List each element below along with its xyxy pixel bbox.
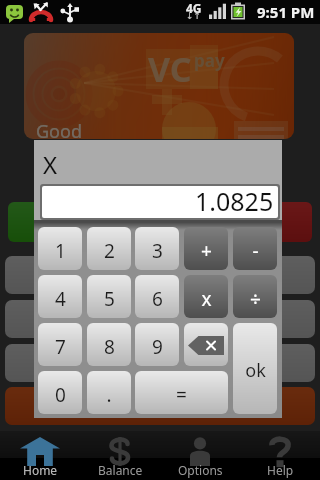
button[interactable] [5, 300, 315, 338]
button[interactable]: VC [24, 33, 294, 139]
button[interactable]: . [87, 371, 131, 414]
staticText: Home [23, 462, 58, 478]
staticText: ok [245, 358, 266, 383]
button[interactable]: 1.0825 [42, 186, 278, 218]
staticText: VC [148, 46, 192, 92]
button[interactable] [8, 202, 144, 242]
button[interactable]: ok [233, 323, 277, 414]
button[interactable]: Help [240, 431, 320, 480]
button[interactable]: Balance [80, 431, 160, 480]
button[interactable]: 4 [38, 275, 82, 318]
staticText: 1 [55, 238, 66, 264]
button[interactable] [5, 344, 315, 382]
staticText: + [201, 238, 212, 264]
button[interactable]: Home [0, 431, 80, 480]
staticText: 1.0825 [195, 186, 274, 216]
button[interactable]: x [184, 275, 228, 318]
staticText: 0 [55, 382, 66, 408]
staticText: X [43, 148, 58, 181]
button[interactable]: ÷ [233, 275, 277, 318]
staticText: 9 [152, 334, 163, 360]
staticText: 6 [152, 286, 163, 312]
staticText: Balance [98, 462, 143, 478]
button[interactable]: - [233, 227, 277, 270]
staticText: 8 [104, 334, 115, 360]
staticText: Help [267, 462, 294, 478]
staticText: ÷ [250, 286, 261, 312]
button[interactable]: 3 [135, 227, 179, 270]
staticText: 2 [104, 238, 115, 264]
button[interactable]: 9 [135, 323, 179, 366]
button[interactable] [5, 256, 315, 294]
button[interactable]: Backspace [184, 323, 228, 366]
button[interactable]: Cancel [176, 202, 312, 242]
staticText: Cancel [218, 211, 271, 234]
staticText: 7 [55, 334, 66, 360]
button[interactable]: 2 [87, 227, 131, 270]
staticText: = [176, 382, 187, 408]
other: Backspace [188, 336, 224, 355]
staticText: Good [36, 119, 82, 139]
staticText: x [201, 286, 212, 312]
staticText: ↓↑ [186, 11, 202, 21]
staticText: pay [194, 49, 225, 72]
staticText: 4 [55, 286, 66, 312]
button[interactable]: 0 [38, 371, 82, 414]
staticText: 3 [152, 238, 163, 264]
button[interactable]: + [184, 227, 228, 270]
button[interactable]: 7 [38, 323, 82, 366]
staticText: 4G [186, 0, 202, 16]
button[interactable]: = [135, 371, 228, 414]
button[interactable]: 8 [87, 323, 131, 366]
button[interactable]: 1 [38, 227, 82, 270]
staticText: . [106, 382, 112, 408]
button[interactable]: 5 [87, 275, 131, 318]
button[interactable]: Options [160, 431, 240, 480]
staticText: Options [178, 462, 223, 478]
staticText: - [252, 238, 259, 264]
staticText: 9:51 PM [257, 2, 315, 22]
button[interactable]: 6 [135, 275, 179, 318]
staticText: 5 [104, 286, 115, 312]
button[interactable] [5, 387, 315, 425]
